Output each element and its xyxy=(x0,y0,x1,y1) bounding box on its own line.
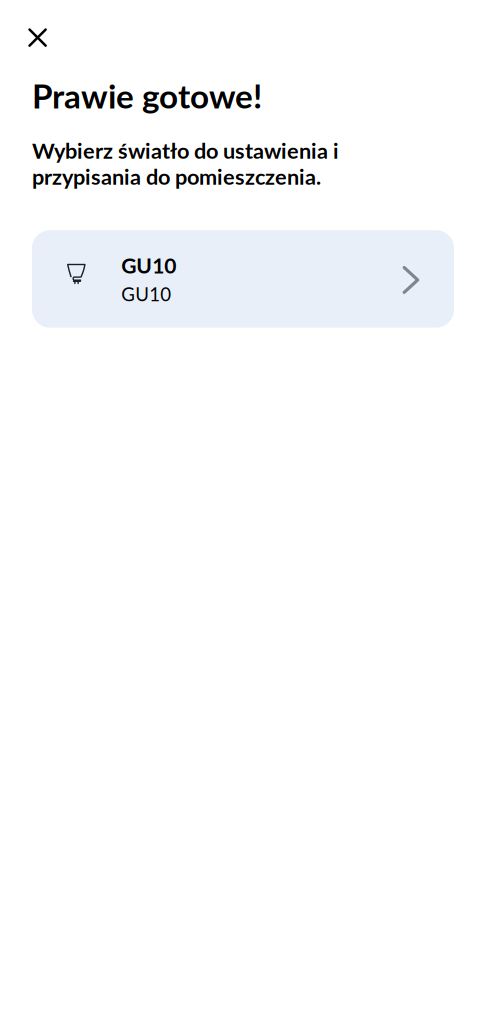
staticText: Wybierz światło do ustawienia i przypisa… xyxy=(32,137,339,189)
staticText: GU10 xyxy=(121,253,176,278)
staticText: Prawie gotowe! xyxy=(32,76,262,115)
staticText: GU10 xyxy=(121,283,171,305)
button[interactable]: GU10 xyxy=(32,230,454,328)
button[interactable]: Close xyxy=(18,18,58,58)
